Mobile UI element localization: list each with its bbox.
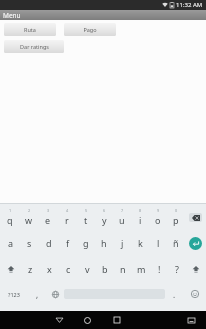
button[interactable]: ?123 <box>0 282 28 306</box>
button[interactable]: v <box>78 256 96 282</box>
button[interactable]: 8 <box>131 204 149 230</box>
button[interactable]: f <box>58 230 77 256</box>
button[interactable]: 1 <box>0 204 19 230</box>
staticText: ñ <box>173 237 179 249</box>
button[interactable]: Switch keyboard <box>177 311 206 329</box>
staticText: 0 <box>175 208 178 213</box>
staticText: Dar ratings <box>20 43 49 50</box>
staticText: ! <box>158 263 161 275</box>
staticText: u <box>119 214 125 226</box>
staticText: 6 <box>103 208 106 213</box>
staticText: Ruta <box>24 26 36 33</box>
button[interactable]: , <box>28 282 46 306</box>
button[interactable]: . <box>165 282 183 306</box>
button[interactable]: c <box>59 256 78 282</box>
staticText: k <box>138 237 143 249</box>
button[interactable]: Back <box>45 311 73 329</box>
button[interactable]: b <box>96 256 114 282</box>
button[interactable]: ñ <box>167 230 185 256</box>
button[interactable]: a <box>1 230 20 256</box>
button[interactable]: s <box>20 230 39 256</box>
staticText: 7 <box>121 208 124 213</box>
button[interactable]: Dar ratings <box>4 40 64 53</box>
staticText: ? <box>175 263 179 275</box>
button[interactable]: j <box>113 230 131 256</box>
staticText: g <box>83 237 89 249</box>
staticText: . <box>173 289 176 300</box>
button[interactable]: 9 <box>149 204 167 230</box>
button[interactable]: z <box>21 256 40 282</box>
button[interactable]: n <box>114 256 132 282</box>
button[interactable]: Recent apps <box>102 311 131 329</box>
button[interactable]: d <box>39 230 58 256</box>
button[interactable]: x <box>40 256 59 282</box>
button[interactable]: 4 <box>57 204 76 230</box>
staticText: , <box>36 289 39 300</box>
staticText: w <box>25 214 33 226</box>
button[interactable]: Home <box>73 311 102 329</box>
button[interactable]: Pago <box>64 23 116 36</box>
staticText: h <box>101 237 107 249</box>
staticText: m <box>137 263 146 275</box>
staticText: e <box>45 214 51 226</box>
staticText: 8 <box>139 208 142 213</box>
staticText: q <box>7 214 13 226</box>
button[interactable]: 5 <box>76 204 95 230</box>
button[interactable]: Shift <box>0 256 21 282</box>
staticText: n <box>120 263 126 275</box>
button[interactable]: l <box>149 230 167 256</box>
staticText: t <box>84 214 88 226</box>
staticText: j <box>121 237 124 249</box>
staticText: 5 <box>85 208 88 213</box>
button[interactable]: 2 <box>19 204 38 230</box>
staticText: 4 <box>66 208 69 213</box>
staticText: p <box>173 214 179 226</box>
staticText: x <box>47 263 52 275</box>
button[interactable]: 7 <box>113 204 131 230</box>
staticText: o <box>155 214 161 226</box>
staticText: a <box>8 237 14 249</box>
staticText: ?123 <box>8 291 20 298</box>
staticText: 9 <box>157 208 160 213</box>
button[interactable]: m <box>132 256 150 282</box>
staticText: s <box>27 237 32 249</box>
staticText: r <box>65 214 69 226</box>
staticText: c <box>66 263 71 275</box>
button[interactable]: Enter <box>185 230 206 256</box>
button[interactable]: Shift <box>186 256 206 282</box>
staticText: 3 <box>47 208 50 213</box>
button[interactable]: g <box>77 230 95 256</box>
button[interactable]: Change language <box>46 282 64 306</box>
staticText: 1 <box>9 208 12 213</box>
button[interactable]: ? <box>168 256 186 282</box>
button[interactable]: ! <box>150 256 168 282</box>
button[interactable]: Ruta <box>4 23 56 36</box>
staticText: f <box>66 237 70 249</box>
staticText: 11:32 AM <box>176 1 203 9</box>
button[interactable]: Backspace <box>185 204 206 230</box>
button[interactable]: 6 <box>95 204 113 230</box>
button[interactable]: 0 <box>167 204 185 230</box>
staticText: Pago <box>83 26 97 33</box>
staticText: 2 <box>28 208 31 213</box>
staticText: i <box>139 214 142 226</box>
button[interactable]: Emoji <box>183 282 206 306</box>
staticText: d <box>46 237 52 249</box>
staticText: l <box>157 237 160 249</box>
staticText: Menu <box>3 11 21 20</box>
button[interactable]: 3 <box>38 204 57 230</box>
button[interactable]: k <box>131 230 149 256</box>
staticText: z <box>28 263 33 275</box>
staticText: b <box>102 263 108 275</box>
button[interactable]: h <box>95 230 113 256</box>
staticText: y <box>102 214 107 226</box>
staticText: v <box>85 263 90 275</box>
